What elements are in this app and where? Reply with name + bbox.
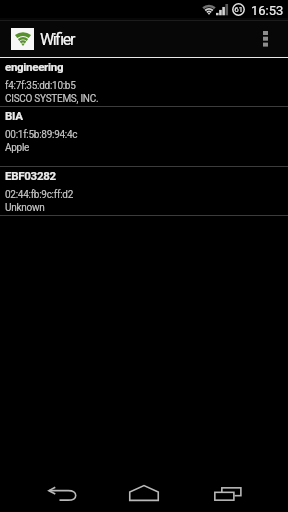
staticText: Wifier <box>40 30 75 49</box>
staticText: BIA <box>5 109 23 122</box>
staticText: 61 <box>234 5 243 14</box>
staticText: 02:44:fb:9c:ff:d2 <box>5 189 73 201</box>
staticText: CISCO SYSTEMS, INC. <box>5 93 99 105</box>
staticText: Unknown <box>5 202 45 214</box>
staticText: f4:7f:35:dd:10:b5 <box>5 80 76 92</box>
button[interactable]: engineering <box>0 58 288 106</box>
staticText: engineering <box>5 60 64 73</box>
button[interactable]: Home <box>121 473 167 512</box>
staticText: 16:53 <box>251 3 284 18</box>
button[interactable]: Recent apps <box>205 474 251 512</box>
button[interactable]: Back <box>38 474 85 512</box>
button[interactable]: EBF03282 <box>0 167 288 215</box>
button[interactable]: BIA <box>0 107 288 166</box>
staticText: EBF03282 <box>5 169 56 182</box>
staticText: 00:1f:5b:89:94:4c <box>5 129 78 141</box>
staticText: Apple <box>5 142 30 154</box>
button[interactable]: More options <box>246 18 288 57</box>
